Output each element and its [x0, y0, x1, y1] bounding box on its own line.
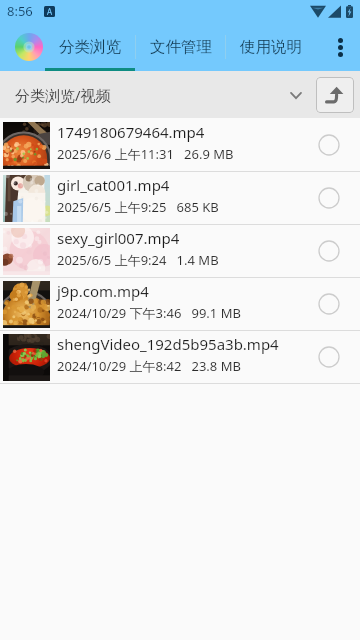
staticText: 分类浏览/视频 — [15, 85, 111, 105]
button[interactable]: 1749180679464.mp4 — [0, 119, 360, 172]
staticText: 2024/10/29 上午8:42 23.8 MB — [57, 357, 241, 375]
staticText: 使用说明 — [240, 37, 302, 57]
staticText: 2025/6/5 上午9:25 685 KB — [57, 198, 219, 216]
button[interactable]: girl_cat001.mp4 — [0, 172, 360, 225]
staticText: 1749180679464.mp4 — [57, 122, 205, 142]
staticText: shengVideo_192d5b95a3b.mp4 — [57, 334, 279, 354]
staticText: 分类浏览 — [59, 37, 121, 57]
staticText: 文件管理 — [150, 37, 212, 57]
staticText: A — [47, 6, 53, 17]
staticText: 2024/10/29 下午3:46 99.1 MB — [57, 304, 241, 322]
button[interactable]: Expand path — [282, 81, 310, 109]
staticText: 8:56 — [7, 2, 33, 20]
staticText: sexy_girl007.mp4 — [57, 228, 180, 248]
staticText: 2025/6/6 上午11:31 26.9 MB — [57, 145, 234, 163]
button[interactable]: Up one level — [316, 77, 354, 113]
button[interactable]: More options — [320, 22, 360, 71]
button[interactable]: 使用说明 — [226, 22, 315, 71]
button[interactable]: 分类浏览 — [45, 22, 135, 71]
staticText: j9p.com.mp4 — [57, 281, 149, 301]
staticText: 2025/6/5 上午9:24 1.4 MB — [57, 251, 219, 269]
button[interactable]: shengVideo_192d5b95a3b.mp4 — [0, 331, 360, 384]
staticText: girl_cat001.mp4 — [57, 175, 170, 195]
button[interactable]: 文件管理 — [136, 22, 225, 71]
button[interactable]: j9p.com.mp4 — [0, 278, 360, 331]
button[interactable]: sexy_girl007.mp4 — [0, 225, 360, 278]
